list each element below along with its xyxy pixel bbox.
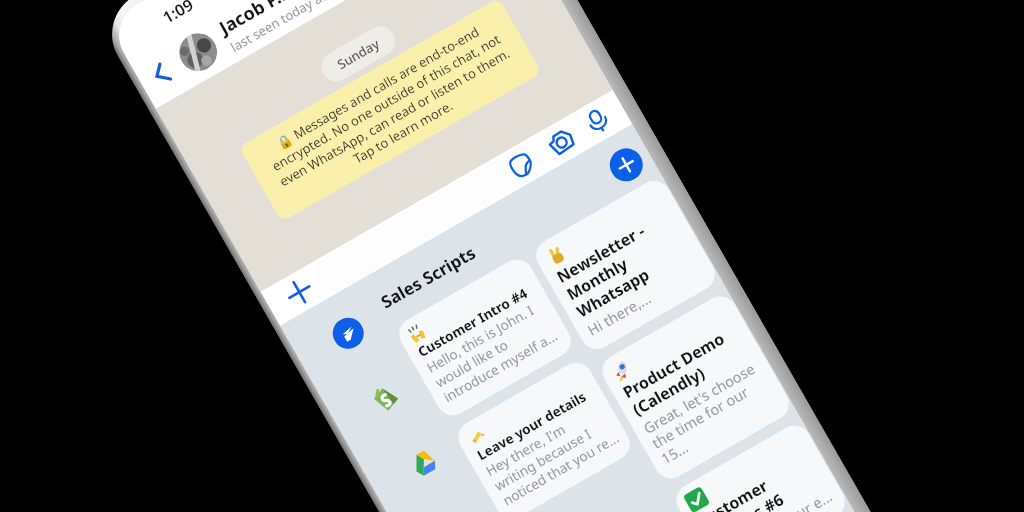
button[interactable]: New script bbox=[604, 142, 649, 187]
staticText: Jacob P... bbox=[215, 0, 295, 40]
staticText: Customer Success #6 bbox=[693, 448, 828, 512]
staticText: Great, let's choose the time for our 15.… bbox=[640, 355, 782, 469]
staticText: last seen today at 12:59 bbox=[227, 0, 361, 56]
button[interactable]: 🔒 Messages and calls are end-to-end encr… bbox=[238, 0, 542, 222]
button[interactable]: Newsletter - Monthly Whatsapp bbox=[530, 175, 721, 355]
staticText: Hi, what is your e... bbox=[714, 486, 836, 512]
staticText: Customer Intro #4 bbox=[414, 284, 531, 361]
button[interactable]: Product Demo (Calendly) bbox=[596, 290, 795, 484]
button[interactable]: Customer Success #6 bbox=[670, 419, 851, 512]
button[interactable]: Profile photo bbox=[172, 26, 224, 78]
staticText: Leave your details bbox=[474, 388, 589, 464]
button[interactable]: Attach bbox=[271, 265, 327, 320]
button[interactable]: Google Drive bbox=[403, 445, 442, 483]
button[interactable]: Leave your details bbox=[452, 357, 636, 512]
staticText: Hello, this is John. I would like to int… bbox=[423, 295, 564, 406]
button[interactable]: Camera bbox=[533, 115, 589, 170]
button[interactable]: Quick replies bbox=[327, 312, 369, 354]
staticText: 1:09 bbox=[159, 0, 197, 28]
staticText: 🔒 Messages and calls are end-to-end encr… bbox=[251, 10, 530, 210]
staticText: Sunday bbox=[334, 35, 383, 73]
staticText: Newsletter - Monthly Whatsapp bbox=[553, 203, 698, 322]
staticText: Hey there, I'm writing because I noticed… bbox=[483, 399, 623, 509]
button[interactable]: Sunday bbox=[316, 21, 400, 87]
button[interactable]: Voice message bbox=[569, 94, 625, 149]
button[interactable]: Customer Intro #4 bbox=[393, 253, 577, 422]
staticText: Product Demo (Calendly) bbox=[619, 318, 754, 420]
staticText: Hi there,... bbox=[583, 287, 655, 340]
button[interactable] bbox=[308, 139, 550, 298]
button[interactable]: Back bbox=[131, 43, 191, 103]
button[interactable]: Shopify bbox=[367, 380, 404, 417]
staticText: Sales Scripts bbox=[377, 241, 480, 313]
